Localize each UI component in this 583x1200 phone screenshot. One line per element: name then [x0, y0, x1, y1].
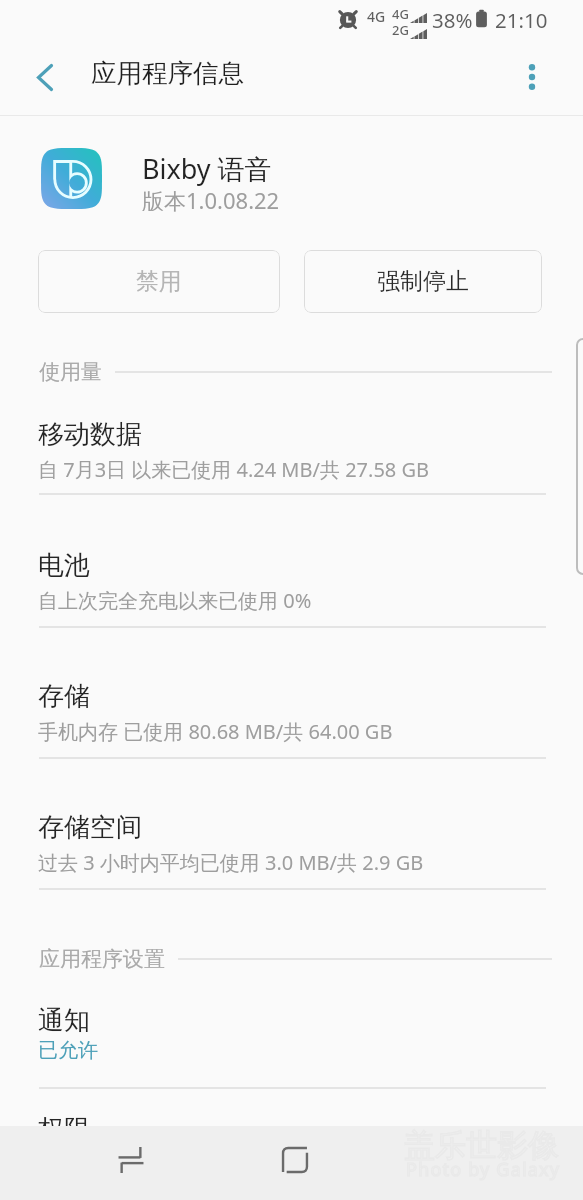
- staticText: 禁用: [136, 267, 182, 296]
- staticText: 2G: [392, 21, 409, 39]
- button[interactable]: 电池: [0, 530, 583, 632]
- staticText: 21:10: [495, 6, 548, 34]
- button[interactable]: 存储: [0, 661, 583, 763]
- button[interactable]: Home: [263, 1131, 320, 1188]
- staticText: 应用程序信息: [91, 57, 244, 89]
- button[interactable]: 通知: [0, 988, 583, 1087]
- staticText: 使用量: [39, 359, 102, 385]
- button[interactable]: 移动数据: [0, 399, 583, 499]
- staticText: 电池: [38, 549, 90, 582]
- staticText: 权限: [38, 1113, 90, 1146]
- staticText: 移动数据: [38, 418, 142, 451]
- button[interactable]: Back: [24, 57, 65, 98]
- staticText: Bixby 语音: [142, 150, 272, 187]
- staticText: 应用程序设置: [39, 946, 165, 972]
- staticText: 强制停止: [377, 267, 469, 296]
- button[interactable]: 禁用: [38, 250, 280, 313]
- button[interactable]: 存储空间: [0, 792, 583, 894]
- staticText: 手机内存 已使用 80.68 MB/共 64.00 GB: [38, 718, 393, 745]
- staticText: 4G: [392, 5, 409, 23]
- staticText: 版本1.0.08.22: [142, 185, 280, 215]
- staticText: 已允许: [38, 1038, 98, 1063]
- button[interactable]: Back: [266, 1131, 323, 1188]
- staticText: 38%: [432, 6, 473, 34]
- staticText: 4G: [367, 7, 386, 26]
- staticText: 自上次完全充电以来已使用 0%: [38, 587, 312, 614]
- button[interactable]: Recents: [102, 1131, 159, 1188]
- button[interactable]: 强制停止: [304, 250, 542, 313]
- staticText: 存储: [38, 680, 90, 713]
- staticText: 自 7月3日 以来已使用 4.24 MB/共 27.58 GB: [38, 456, 430, 483]
- button[interactable]: 权限: [0, 1087, 583, 1147]
- staticText: 过去 3 小时内平均已使用 3.0 MB/共 2.9 GB: [38, 849, 424, 876]
- button[interactable]: More options: [511, 56, 553, 98]
- staticText: 通知: [38, 1004, 90, 1037]
- staticText: 存储空间: [38, 811, 142, 844]
